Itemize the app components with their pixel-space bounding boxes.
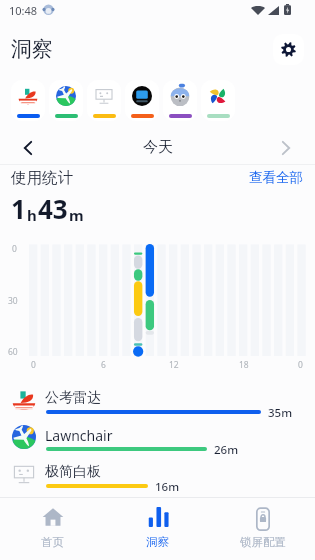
staticText: 60 <box>8 346 18 358</box>
staticText: m <box>69 205 84 225</box>
staticText: 0 <box>12 243 17 255</box>
staticText: 0 <box>31 359 36 371</box>
staticText: 极简白板 <box>45 463 101 481</box>
button[interactable]: 公考雷达 <box>0 384 315 421</box>
staticText: 使用统计 <box>11 168 73 188</box>
button[interactable]: 首页 <box>0 498 105 560</box>
button[interactable]: Next day <box>270 132 302 164</box>
button[interactable]: 查看全部 <box>248 168 304 187</box>
staticText: 35m <box>268 405 293 421</box>
staticText: 首页 <box>41 535 64 549</box>
staticText: 30 <box>8 295 18 307</box>
button[interactable]: Lawnchair <box>0 421 315 458</box>
staticText: 今天 <box>143 138 173 157</box>
button[interactable]: App 0 <box>11 80 45 121</box>
staticText: 0 <box>298 359 303 371</box>
staticText: h <box>27 205 37 225</box>
staticText: 18 <box>239 359 249 371</box>
button[interactable]: App 4 <box>163 80 197 121</box>
staticText: 锁屏配置 <box>240 535 286 549</box>
staticText: 10:48 <box>9 3 38 18</box>
staticText: 43 <box>38 191 68 226</box>
button[interactable]: App 2 <box>87 80 121 121</box>
button[interactable]: Previous day <box>12 132 44 164</box>
staticText: 查看全部 <box>249 169 303 186</box>
staticText: 洞察 <box>146 535 169 549</box>
staticText: 1 <box>11 191 26 226</box>
button[interactable]: App 3 <box>125 80 159 121</box>
staticText: 12 <box>169 359 179 371</box>
staticText: 26m <box>214 442 239 458</box>
button[interactable]: 极简白板 <box>0 458 315 495</box>
button[interactable]: App 5 <box>201 80 235 121</box>
staticText: 6 <box>101 359 106 371</box>
button[interactable]: App 1 <box>49 80 83 121</box>
staticText: 洞察 <box>11 36 53 62</box>
button[interactable]: 洞察 <box>105 498 210 560</box>
button[interactable]: 锁屏配置 <box>210 498 315 560</box>
staticText: 公考雷达 <box>45 389 101 407</box>
staticText: 16m <box>155 479 180 495</box>
staticText: Lawnchair <box>45 426 113 445</box>
button[interactable]: Settings <box>273 34 304 65</box>
